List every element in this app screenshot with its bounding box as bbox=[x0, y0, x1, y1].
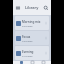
staticText: 31 tracks bbox=[22, 54, 33, 57]
staticText: 18 tracks bbox=[22, 39, 33, 42]
button[interactable]: Evening bbox=[15, 46, 49, 60]
button[interactable]: You bbox=[40, 61, 46, 64]
button[interactable]: Open navigation menu bbox=[15, 5, 21, 11]
button[interactable]: Search bbox=[43, 5, 49, 11]
button[interactable]: More options bbox=[44, 36, 48, 40]
staticText: Evening bbox=[22, 50, 34, 54]
staticText: Morning mix bbox=[22, 20, 41, 24]
button[interactable]: Home bbox=[18, 61, 24, 64]
button[interactable]: Morning mix bbox=[15, 16, 49, 30]
button[interactable]: Browse bbox=[29, 61, 35, 64]
staticText: Focus bbox=[22, 35, 31, 39]
staticText: Library bbox=[25, 5, 39, 10]
button[interactable]: More options bbox=[44, 51, 48, 55]
button[interactable]: Focus bbox=[15, 31, 49, 45]
button[interactable]: More options bbox=[44, 21, 48, 25]
staticText: 24 tracks bbox=[22, 24, 33, 27]
